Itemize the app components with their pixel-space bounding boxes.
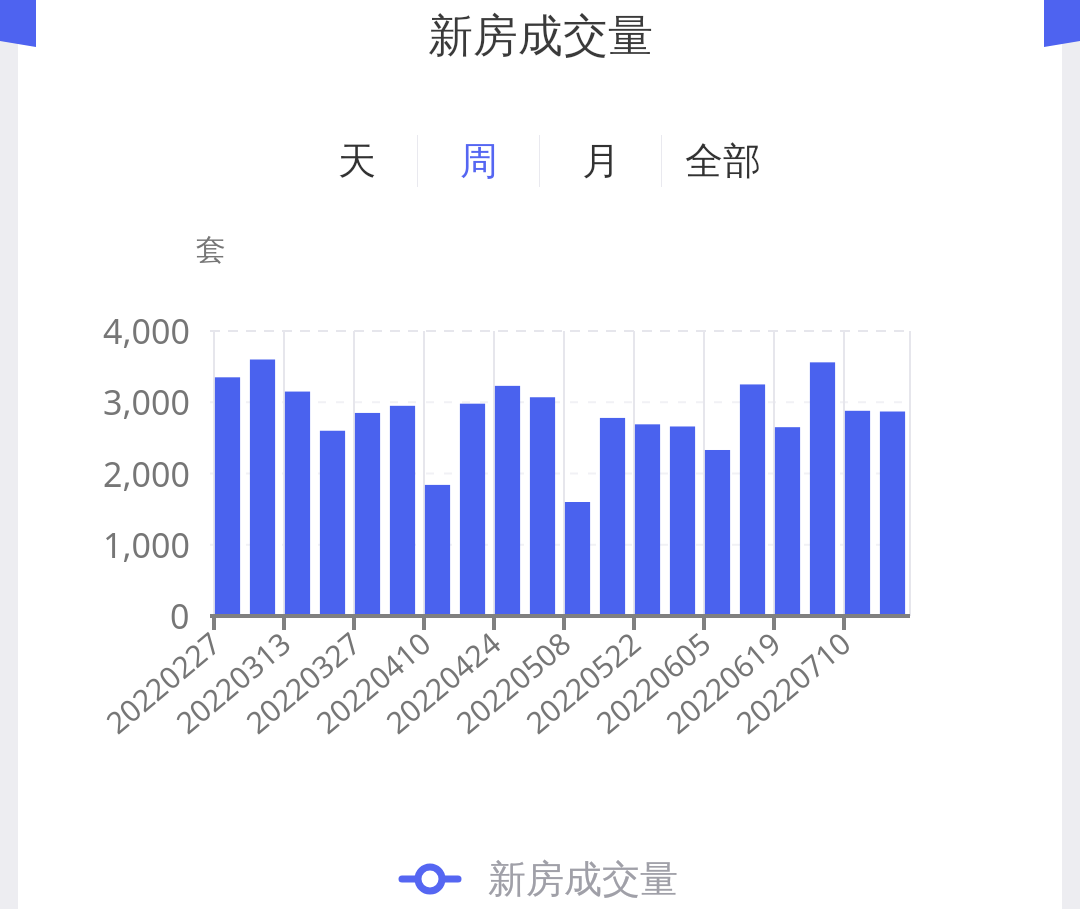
button[interactable]: 月 <box>540 113 661 209</box>
staticText: 月 <box>582 137 620 185</box>
button[interactable]: 新房成交量 legend <box>402 855 678 903</box>
button[interactable]: 周 <box>418 113 539 209</box>
button[interactable]: 天 <box>297 113 417 209</box>
staticText: 新房成交量 <box>488 855 678 903</box>
staticText: 新房成交量 <box>428 8 653 65</box>
staticText: 天 <box>338 137 376 185</box>
staticText: 全部 <box>685 137 761 185</box>
staticText: 周 <box>460 137 498 185</box>
button[interactable]: 全部 <box>662 113 783 209</box>
